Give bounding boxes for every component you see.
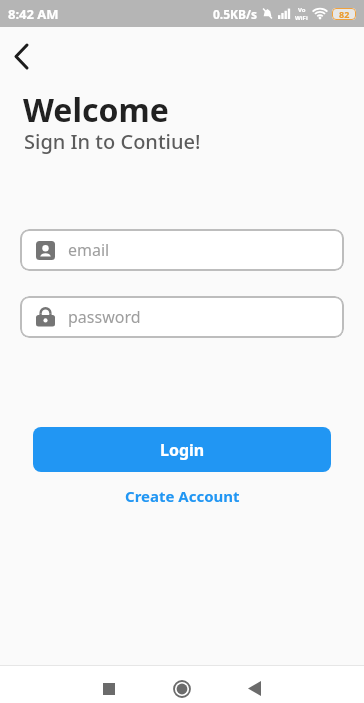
button[interactable]: [91, 671, 126, 703]
staticText: Welcome: [23, 88, 169, 132]
staticText: WiFi: [295, 14, 308, 22]
button[interactable]: email: [20, 229, 344, 271]
staticText: 8:42 AM: [8, 5, 59, 23]
staticText: Login: [160, 439, 205, 461]
staticText: password: [68, 306, 141, 328]
button[interactable]: Login: [33, 427, 331, 472]
button[interactable]: [3, 38, 39, 74]
button[interactable]: [164, 671, 199, 703]
staticText: email: [68, 239, 110, 261]
button[interactable]: [237, 671, 272, 703]
staticText: 82: [339, 8, 350, 20]
staticText: Vo: [298, 6, 306, 14]
button[interactable]: Create Account: [125, 486, 240, 506]
button[interactable]: password: [20, 296, 344, 338]
staticText: Sign In to Contiue!: [24, 128, 201, 155]
staticText: 0.5KB/s: [213, 6, 258, 22]
